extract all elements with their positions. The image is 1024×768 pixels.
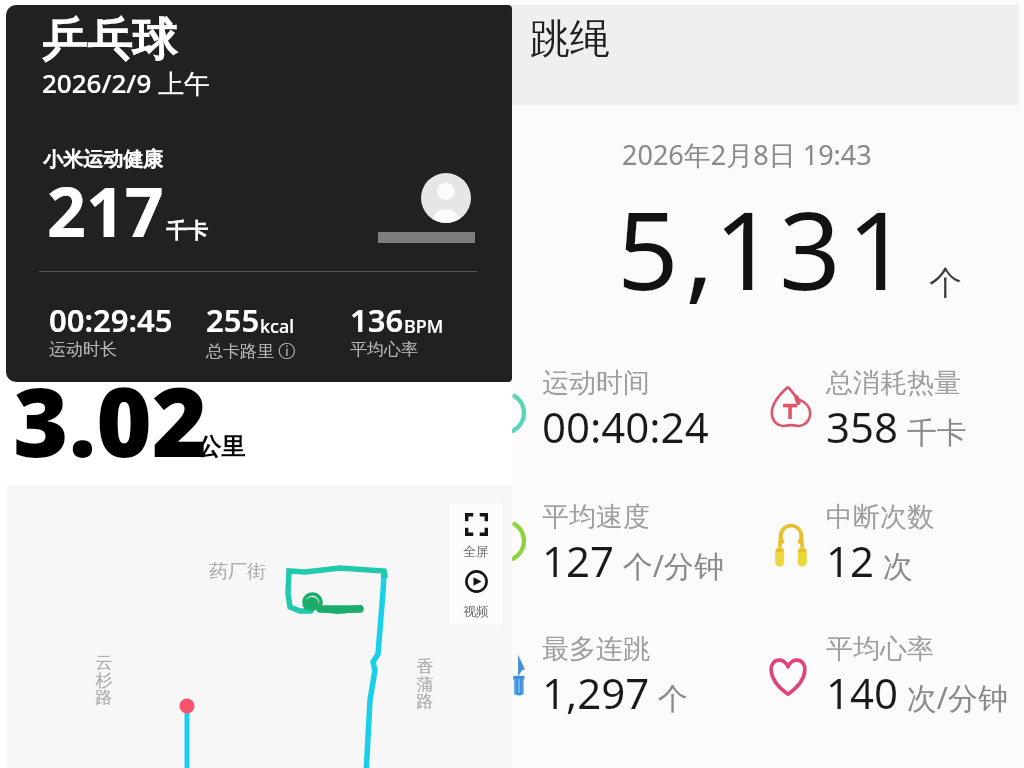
button[interactable]: 全屏	[449, 503, 503, 563]
staticText: kcal	[260, 314, 295, 339]
staticText: 中断次数	[826, 500, 934, 534]
staticText: 5	[617, 175, 679, 322]
button[interactable]	[764, 612, 1018, 724]
staticText: 公里	[197, 432, 245, 462]
staticText: ,	[685, 175, 714, 322]
staticText: 总卡路里 ⓘ	[206, 339, 296, 362]
staticText: 乒乓球	[42, 12, 177, 69]
staticText: 127	[542, 532, 615, 589]
staticText: 1	[847, 175, 909, 322]
staticText: 217	[47, 164, 164, 257]
staticText: 小米运动健康	[43, 147, 163, 172]
staticText: 次	[875, 545, 913, 586]
staticText: 255	[206, 299, 260, 341]
staticText: 个/分钟	[615, 545, 724, 586]
staticText: 00:40:24	[542, 398, 709, 455]
button[interactable]	[512, 346, 766, 458]
button[interactable]: 头像	[421, 173, 471, 223]
staticText: 个	[650, 677, 688, 718]
staticText: 2026/2/9 上午	[42, 65, 211, 101]
staticText: 千卡	[899, 411, 967, 452]
staticText: 358	[826, 398, 899, 455]
staticText: 运动时间	[542, 366, 650, 400]
button[interactable]: 视频	[449, 563, 503, 625]
staticText: 视频	[463, 603, 489, 619]
staticText: 云杉路	[94, 652, 114, 708]
staticText: 次/分钟	[899, 677, 1008, 718]
staticText: 药厂街	[209, 560, 266, 584]
button[interactable]	[764, 346, 1018, 458]
staticText: 1	[714, 175, 776, 322]
staticText: 00:29:45	[49, 299, 173, 341]
button[interactable]: 乒乓球	[6, 5, 512, 382]
button[interactable]: 药厂街	[7, 485, 512, 768]
staticText: 3.02	[13, 355, 208, 484]
staticText: 1,297	[542, 664, 650, 721]
staticText: 140	[826, 664, 899, 721]
staticText: 最多连跳	[542, 632, 650, 666]
staticText: 个	[929, 262, 962, 304]
button[interactable]	[764, 480, 1018, 592]
staticText: 香蒲路	[415, 656, 435, 712]
staticText: 12	[826, 532, 875, 589]
staticText: 136	[350, 299, 404, 341]
staticText: 2026年2月8日 19:43	[622, 136, 872, 173]
staticText: 3	[779, 175, 841, 322]
staticText: 运动时长	[49, 339, 117, 360]
button[interactable]	[512, 612, 766, 724]
button[interactable]	[512, 480, 766, 592]
staticText: 总消耗热量	[826, 366, 961, 400]
staticText: 跳绳	[530, 13, 610, 63]
staticText: 平均速度	[542, 500, 650, 534]
staticText: 平均心率	[350, 339, 418, 360]
staticText: 全屏	[463, 543, 489, 559]
staticText: BPM	[404, 314, 444, 339]
staticText: 千卡	[166, 218, 208, 244]
staticText: 平均心率	[826, 632, 934, 666]
